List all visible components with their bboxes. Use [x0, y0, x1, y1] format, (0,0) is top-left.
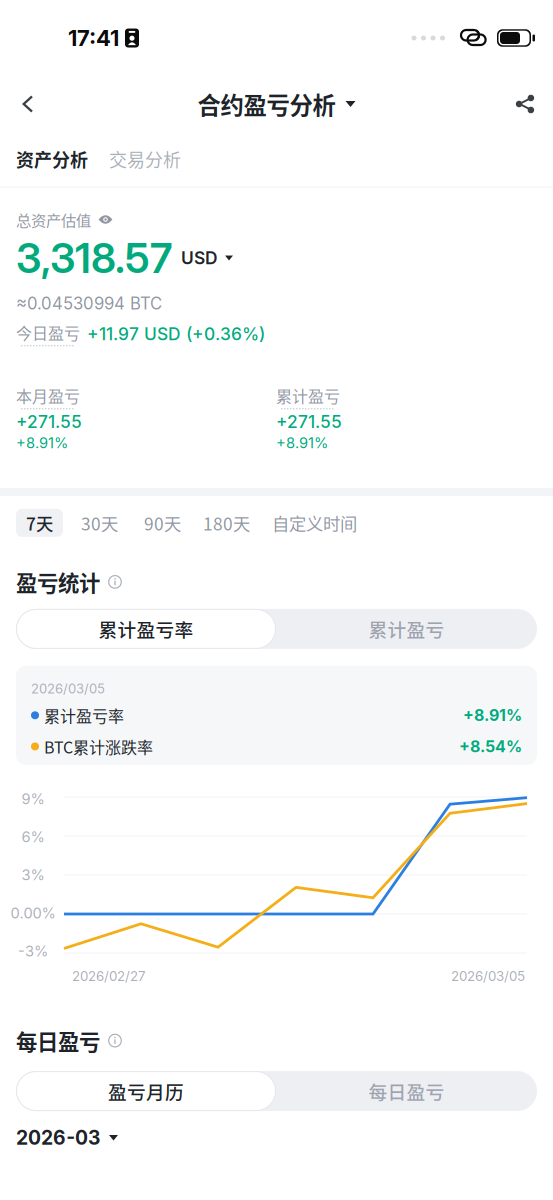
staticText: 合约盈亏分析: [197, 87, 335, 121]
staticText: 本月盈亏: [16, 384, 80, 407]
staticText: 每日盈亏: [368, 1077, 444, 1104]
button[interactable]: 2026-03: [0, 1111, 553, 1149]
staticText: 0.00%: [10, 904, 55, 922]
staticText: ≈0.04530994 BTC: [16, 293, 162, 314]
staticText: +271.55: [16, 411, 82, 432]
staticText: 90天: [144, 510, 181, 535]
button[interactable]: Share: [497, 80, 553, 128]
button[interactable]: 180天: [193, 509, 260, 537]
staticText: -3%: [18, 942, 48, 960]
button[interactable]: 7天: [16, 509, 63, 537]
staticText: +8.91%: [16, 434, 68, 452]
staticText: 盈亏统计: [16, 566, 100, 597]
staticText: 2026-03: [16, 1126, 100, 1149]
staticText: 盈亏月历: [108, 1077, 184, 1104]
staticText: 7天: [26, 510, 53, 535]
staticText: 累计盈亏率: [98, 615, 193, 642]
staticText: +8.54%: [459, 737, 522, 756]
button[interactable]: 交易分析: [88, 137, 181, 181]
staticText: 3,318.57: [16, 233, 172, 283]
staticText: 3%: [21, 866, 44, 884]
staticText: 资产分析: [16, 146, 88, 172]
staticText: 自定义时间: [272, 510, 357, 535]
button[interactable]: 累计盈亏率: [16, 609, 276, 649]
staticText: 2026/03/05: [451, 968, 525, 984]
staticText: 17:41: [68, 25, 119, 51]
staticText: 2026/03/05: [31, 681, 105, 697]
staticText: 30天: [81, 510, 118, 535]
button[interactable]: 累计盈亏: [276, 609, 537, 649]
staticText: 累计盈亏: [276, 384, 340, 407]
button[interactable]: 合约盈亏分析: [197, 76, 355, 132]
staticText: 2026/02/27: [72, 968, 146, 984]
button[interactable]: 每日盈亏: [276, 1071, 537, 1111]
staticText: BTC累计涨跌率: [44, 735, 153, 758]
staticText: USD: [181, 247, 218, 268]
staticText: 每日盈亏: [16, 1025, 100, 1056]
button[interactable]: 90天: [134, 509, 191, 537]
staticText: 今日盈亏: [16, 321, 80, 344]
staticText: 9%: [21, 790, 44, 808]
staticText: +271.55: [276, 411, 342, 432]
staticText: 总资产估值: [16, 208, 91, 231]
button[interactable]: 资产分析: [16, 137, 88, 181]
button[interactable]: Back: [0, 80, 56, 128]
staticText: 累计盈亏率: [44, 704, 124, 727]
staticText: 累计盈亏: [368, 615, 444, 642]
staticText: +8.91%: [276, 434, 328, 452]
staticText: +11.97 USD (+0.36%): [87, 323, 265, 344]
button[interactable]: 自定义时间: [262, 509, 367, 537]
staticText: 交易分析: [109, 146, 181, 172]
staticText: 180天: [203, 510, 250, 535]
staticText: +8.91%: [463, 706, 522, 725]
button[interactable]: 盈亏月历: [16, 1071, 276, 1111]
button[interactable]: 30天: [71, 509, 128, 537]
staticText: 6%: [21, 828, 44, 846]
